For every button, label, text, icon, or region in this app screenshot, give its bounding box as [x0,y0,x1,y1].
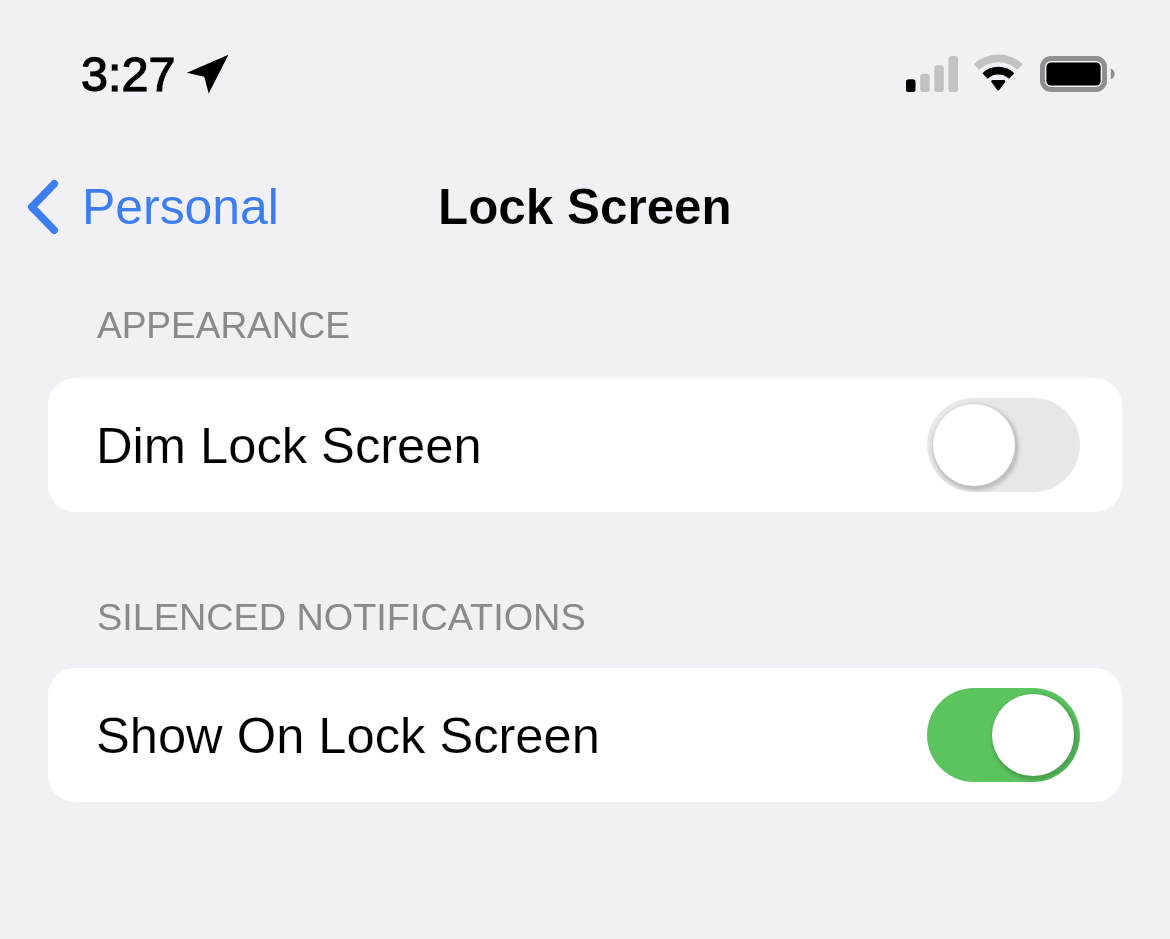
staticText: Lock Screen [438,179,732,234]
button[interactable]: Back to Personal [0,173,297,241]
staticText: SILENCED NOTIFICATIONS [97,596,586,638]
staticText: 3:27 [81,47,176,101]
staticText: Personal [82,179,279,235]
button[interactable]: Switch on [927,688,1080,782]
staticText: Dim Lock Screen [96,417,482,474]
staticText: 3:27 [81,47,176,101]
staticText: Show On Lock Screen [96,707,600,764]
staticText: APPEARANCE [97,305,350,346]
button[interactable]: Dim Lock Screen [48,378,1122,512]
button[interactable]: Switch off [927,398,1080,492]
button[interactable]: Show On Lock Screen [48,668,1122,802]
